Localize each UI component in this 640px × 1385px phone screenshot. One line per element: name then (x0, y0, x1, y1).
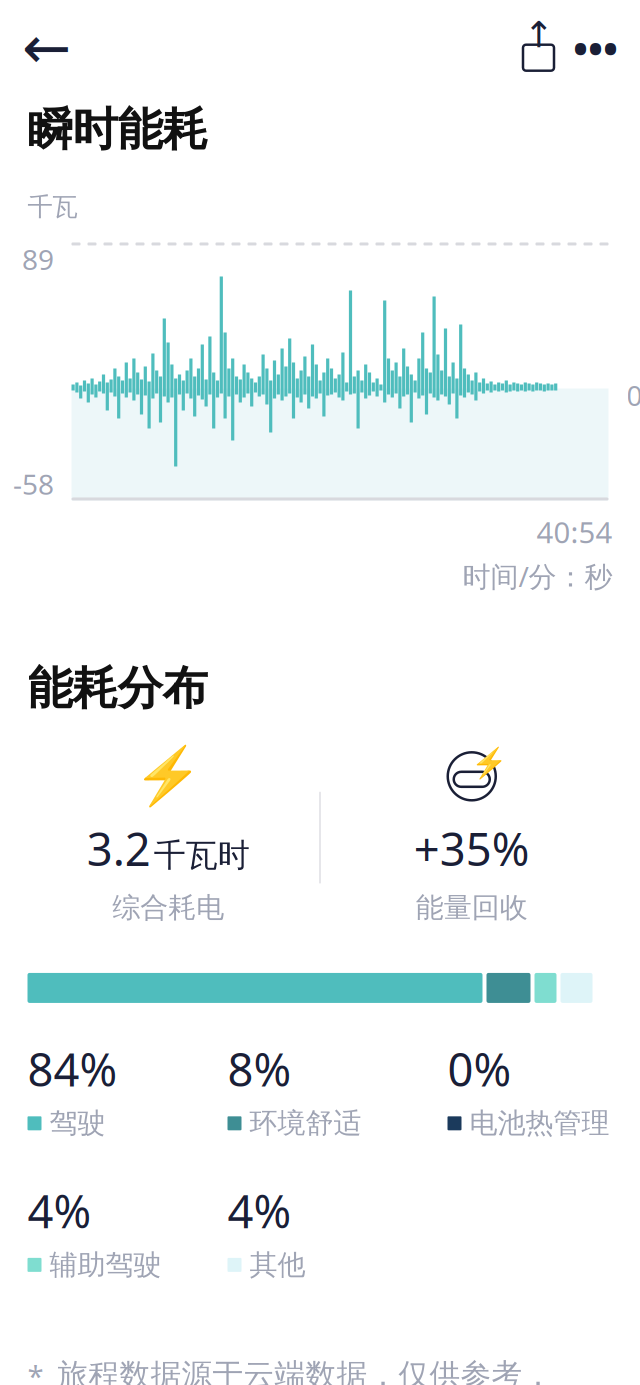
staticText: 时间/分：秒 (462, 557, 612, 595)
staticText: 辅助驾驶 (49, 1248, 161, 1282)
staticText: 89 (22, 240, 54, 278)
staticText: -58 (13, 465, 54, 502)
staticText: 电池热管理 (469, 1106, 609, 1140)
staticText: ← (22, 14, 71, 81)
staticText: 0% (447, 1039, 511, 1099)
staticText: 能量回收 (416, 890, 528, 925)
button[interactable]: 返回 (15, 20, 77, 76)
staticText: * (27, 1356, 43, 1385)
staticText: ⚡ (133, 744, 203, 808)
staticText: 40:54 (536, 512, 612, 551)
staticText: 其他 (249, 1248, 305, 1282)
staticText: +35% (414, 818, 530, 878)
staticText: 旅程数据源于云端数据，仅供参考，具体数据以车辆内显示数据为准。 (57, 1356, 553, 1385)
button[interactable]: 分享 (510, 20, 566, 76)
staticText: ••• (573, 21, 618, 74)
staticText: 0 (626, 376, 640, 414)
staticText: ⚡ (471, 747, 508, 780)
staticText: 8% (227, 1039, 291, 1099)
staticText: 驾驶 (49, 1106, 105, 1140)
staticText: 瞬时能耗 (27, 102, 207, 157)
staticText: 4% (227, 1180, 291, 1241)
staticText: 4% (27, 1180, 91, 1241)
staticText: 综合耗电 (112, 890, 224, 925)
button[interactable]: 更多 (566, 20, 624, 76)
staticText: 千瓦时 (154, 836, 250, 875)
staticText: 能耗分布 (27, 661, 207, 716)
staticText: 环境舒适 (249, 1106, 361, 1140)
staticText: 84% (27, 1039, 117, 1099)
staticText: 3.2 (87, 818, 151, 878)
staticText: ↑ (523, 14, 553, 55)
staticText: 千瓦 (27, 191, 77, 222)
